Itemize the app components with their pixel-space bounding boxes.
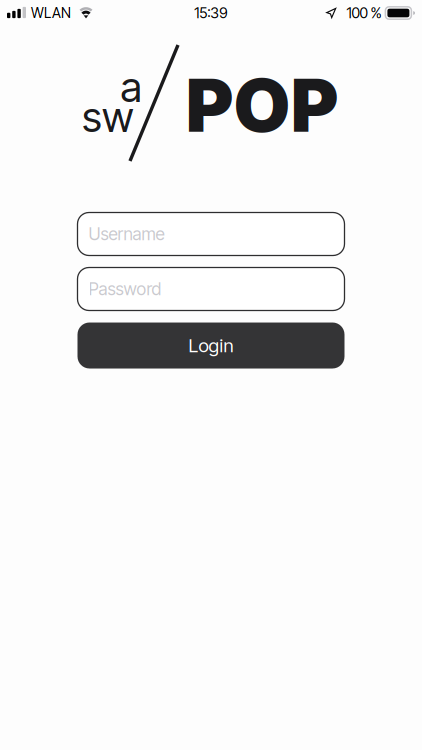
staticText: Username [88,223,164,244]
staticText: POP [185,61,338,149]
button[interactable]: Username [77,212,344,255]
button[interactable]: Login [77,322,344,368]
staticText: Login [188,334,233,357]
staticText: a [120,62,141,112]
staticText: WLAN [31,4,71,21]
staticText: 100 % [346,4,381,22]
button[interactable]: Password [77,267,344,310]
staticText: sw [82,92,134,142]
staticText: Password [88,278,161,299]
staticText: 15:39 [194,4,227,22]
